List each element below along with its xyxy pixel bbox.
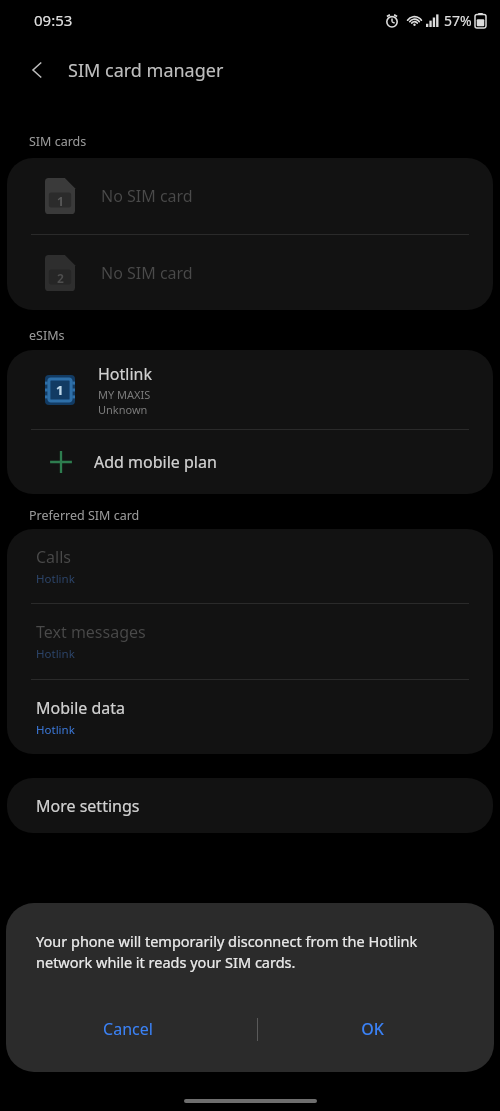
staticText: Calls — [36, 546, 72, 568]
staticText: Hotlink — [36, 646, 75, 662]
staticText: Mobile data — [36, 697, 126, 719]
staticText: 57% — [444, 11, 472, 30]
button[interactable]: More settings — [7, 778, 493, 833]
staticText: Hotlink — [98, 363, 153, 385]
staticText: 1 — [56, 381, 64, 399]
staticText: eSIMs — [29, 327, 65, 344]
button[interactable]: Calls — [7, 529, 493, 603]
button[interactable]: Add mobile plan — [7, 430, 493, 494]
staticText: Your phone will temporarily disconnect f… — [36, 931, 458, 973]
button[interactable]: 1 — [7, 350, 493, 429]
staticText: Preferred SIM card — [29, 507, 140, 524]
staticText: Add mobile plan — [94, 451, 217, 473]
button[interactable]: 2 — [7, 235, 493, 310]
staticText: SIM card manager — [68, 58, 224, 83]
button[interactable]: Cancel — [6, 1008, 250, 1050]
button[interactable]: Mobile data — [7, 680, 493, 754]
other: Add mobile plan — [48, 449, 74, 475]
staticText: Hotlink — [36, 571, 75, 587]
staticText: Hotlink — [36, 722, 75, 738]
staticText: Text messages — [36, 621, 146, 643]
staticText: MY MAXIS — [98, 387, 151, 402]
button[interactable]: Back — [20, 52, 56, 88]
staticText: No SIM card — [101, 262, 193, 284]
staticText: No SIM card — [101, 185, 193, 207]
button[interactable]: Text messages — [7, 604, 493, 679]
staticText: Cancel — [103, 1018, 153, 1040]
staticText: 1 — [57, 193, 64, 209]
staticText: Unknown — [98, 402, 148, 417]
button[interactable]: OK — [250, 1008, 494, 1050]
staticText: OK — [361, 1018, 384, 1040]
staticText: 09:53 — [34, 10, 73, 30]
staticText: 2 — [57, 270, 64, 286]
staticText: SIM cards — [29, 133, 87, 150]
button[interactable]: 1 — [7, 158, 493, 234]
staticText: More settings — [36, 795, 140, 817]
